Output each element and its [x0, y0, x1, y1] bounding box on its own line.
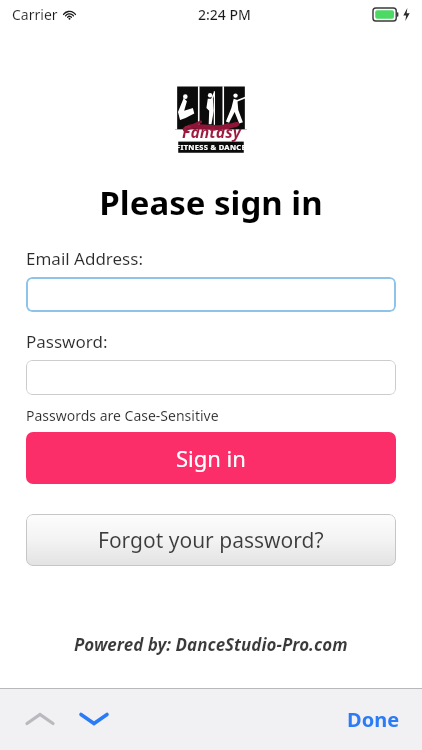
button[interactable]: Done	[347, 706, 400, 733]
staticText: Please sign in	[99, 180, 323, 225]
staticText: Sign in	[176, 443, 246, 473]
staticText: Carrier	[12, 5, 58, 24]
staticText: FITNESS & DANCE	[176, 142, 246, 152]
staticText: Email Address:	[26, 247, 143, 270]
button[interactable]: Next field	[72, 697, 116, 741]
staticText: 2:24 PM	[198, 5, 251, 24]
button[interactable]: Password input	[26, 360, 396, 395]
staticText: Password:	[26, 330, 108, 353]
staticText: Fantasy	[182, 121, 241, 143]
staticText: Passwords are Case-Sensitive	[26, 406, 219, 425]
button[interactable]: Previous field	[18, 697, 62, 741]
button[interactable]: Email Address input	[26, 277, 396, 312]
staticText: Powered by: DanceStudio-Pro.com	[74, 633, 348, 656]
button[interactable]: Sign in	[26, 432, 396, 484]
staticText: Forgot your password?	[98, 526, 324, 555]
button[interactable]: Forgot your password?	[26, 514, 396, 566]
staticText: Done	[347, 706, 400, 733]
